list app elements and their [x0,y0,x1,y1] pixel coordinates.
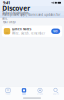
staticText: Apps [22,93,26,95]
staticText: Today’s highlights [2,11,28,15]
staticText: GET [53,29,58,33]
staticText: FEATURED [3,20,16,24]
staticText: Discover [2,4,30,13]
button[interactable]: Lumen Notes [2,25,62,37]
button[interactable]: Search [48,87,64,95]
staticText: 9:41 [3,0,10,5]
button[interactable]: Arcade [32,87,48,95]
staticText: Lumen Notes [12,27,31,31]
staticText: Hand-picked apps, stories and updates fo… [2,13,60,20]
staticText: Write, sketch, remember [12,32,45,35]
button[interactable]: Apps [16,87,32,95]
button[interactable]: Today [0,87,16,95]
